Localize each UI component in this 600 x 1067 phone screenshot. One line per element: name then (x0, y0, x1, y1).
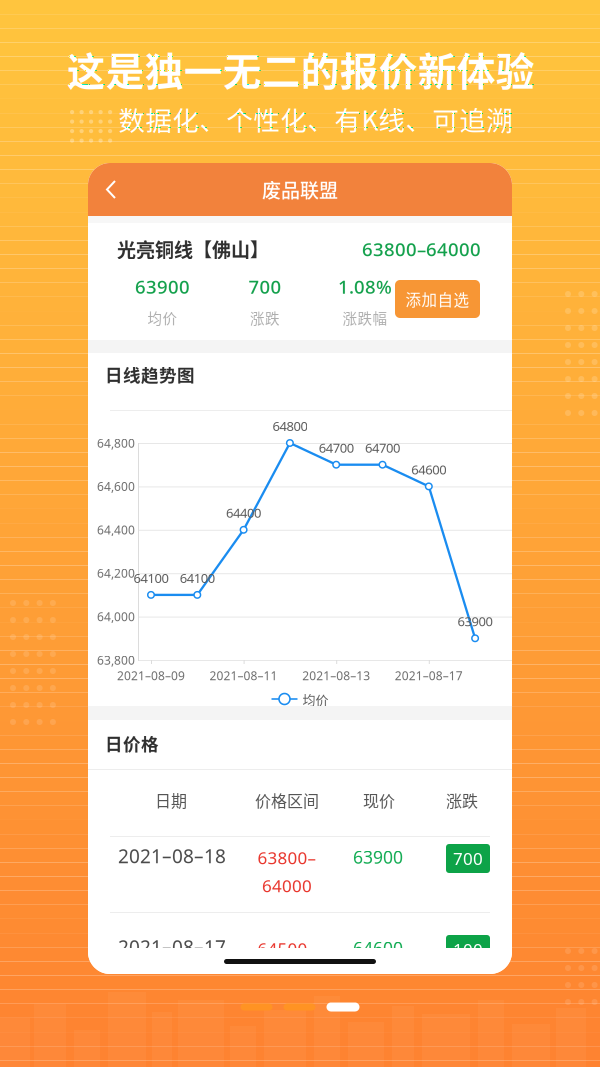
staticText: 现价 (363, 788, 395, 812)
staticText: 数据化、个性化、有K线、可追溯 (118, 100, 513, 138)
staticText: 100 (453, 938, 483, 961)
staticText: 63800–64000 (362, 236, 481, 262)
staticText: 均价 (147, 307, 177, 328)
staticText: 700 (248, 274, 281, 299)
staticText: 64600 (411, 460, 446, 478)
staticText: 64400 (226, 504, 261, 522)
staticText: 价格区间 (255, 788, 319, 812)
button[interactable]: Page 3 (326, 1002, 359, 1011)
button[interactable]: 返回 (88, 163, 512, 216)
staticText: 64600 (353, 936, 403, 960)
staticText: 700 (453, 847, 483, 870)
staticText: 64100 (180, 569, 215, 587)
staticText: 64,800 (97, 435, 135, 451)
staticText: 2021–08–17 (118, 934, 226, 960)
staticText: 63900 (135, 274, 190, 299)
staticText: 63800– (257, 846, 316, 869)
staticText: 2021–08–09 (117, 667, 185, 684)
staticText: 废品联盟 (262, 176, 338, 203)
staticText: 64700 (365, 439, 400, 456)
staticText: 光亮铜线【佛山】 (117, 235, 269, 263)
staticText: 64000 (262, 874, 312, 897)
staticText: 这是独一无二的报价新体验 (67, 41, 535, 97)
staticText: 64700 (319, 439, 354, 456)
staticText: 日线趋势图 (105, 361, 195, 387)
staticText: 63900 (353, 845, 403, 869)
staticText: 64100 (133, 569, 168, 587)
staticText: 日价格 (105, 730, 159, 756)
staticText: 64700 (262, 965, 312, 988)
staticText: 涨跌 (250, 307, 280, 328)
staticText: 64,000 (97, 608, 135, 625)
staticText: 均价 (302, 690, 328, 708)
staticText: 63,800 (97, 652, 135, 668)
staticText: 2021–08–11 (210, 667, 278, 684)
staticText: 64,600 (97, 478, 135, 494)
button[interactable]: 添加自选 (395, 280, 480, 318)
staticText: 64,200 (97, 565, 135, 581)
staticText: 2021–08–13 (302, 667, 370, 684)
staticText: 64,400 (97, 522, 135, 538)
staticText: 64800 (272, 417, 307, 435)
staticText: 1.08% (338, 274, 392, 299)
staticText: 日期 (155, 788, 187, 812)
button[interactable]: Page 2 (283, 1003, 315, 1010)
staticText: 64500– (257, 937, 316, 960)
staticText: 2021–08–17 (395, 667, 463, 684)
staticText: 涨跌 (446, 788, 478, 812)
staticText: 涨跌幅 (342, 307, 387, 328)
staticText: 2021–08–18 (118, 843, 226, 869)
staticText: 63900 (458, 612, 493, 630)
staticText: 添加自选 (405, 288, 469, 310)
